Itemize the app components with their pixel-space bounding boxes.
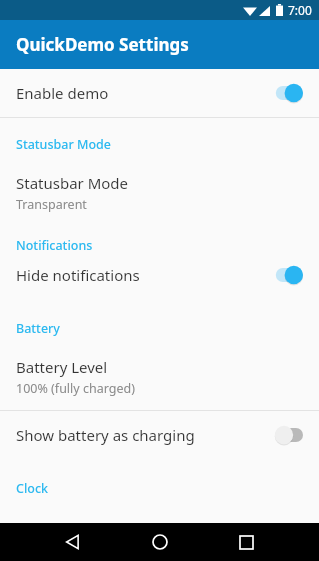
staticText: Show battery as charging	[16, 425, 269, 445]
staticText: Notifications	[16, 237, 93, 254]
button[interactable]: Show battery as charging	[0, 411, 319, 458]
staticText: Transparent	[16, 196, 87, 213]
button[interactable]: Statusbar Mode	[0, 171, 319, 215]
staticText: Statusbar Mode	[16, 136, 111, 153]
button[interactable]: Hide notifications	[0, 254, 319, 296]
staticText: 7:00	[288, 2, 312, 18]
button[interactable]: Recent apps	[230, 526, 262, 558]
staticText: 100% (fully charged)	[16, 380, 135, 397]
staticText: Statusbar Mode	[16, 173, 129, 193]
button[interactable]: Battery Level	[0, 355, 319, 399]
button[interactable]: Home	[144, 526, 176, 558]
staticText: QuickDemo Settings	[16, 33, 189, 56]
button[interactable]: Enable demo	[0, 69, 319, 117]
staticText: Enable demo	[16, 83, 269, 103]
button[interactable]: Back	[57, 526, 89, 558]
staticText: Battery Level	[16, 357, 108, 377]
staticText: Clock	[16, 480, 49, 497]
staticText: Hide notifications	[16, 265, 269, 285]
staticText: Battery	[16, 320, 60, 337]
